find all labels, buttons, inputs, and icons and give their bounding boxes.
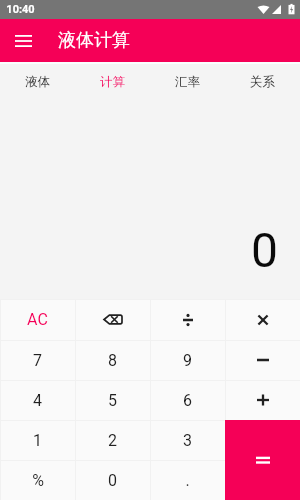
staticText: 9 (183, 351, 192, 370)
button[interactable]: 7 (0, 340, 75, 380)
button[interactable]: 5 (75, 380, 150, 420)
staticText: 7 (33, 351, 42, 370)
staticText: 计算 (100, 74, 125, 90)
staticText: AC (27, 310, 48, 329)
staticText: 0 (251, 222, 278, 278)
staticText: 5 (108, 391, 117, 410)
button[interactable]: Equals (225, 420, 300, 500)
staticText: 1 (33, 431, 42, 450)
button[interactable]: Divide (150, 299, 225, 340)
button[interactable]: Plus (225, 380, 300, 420)
staticText: . (185, 471, 190, 490)
staticText: 8 (108, 351, 117, 370)
staticText: 4 (33, 391, 42, 410)
button[interactable]: 2 (75, 420, 150, 460)
button[interactable]: 3 (150, 420, 225, 460)
button[interactable]: AC (0, 299, 75, 340)
button[interactable]: 8 (75, 340, 150, 380)
staticText: 0 (108, 471, 117, 490)
button[interactable]: Minus (225, 340, 300, 380)
staticText: 液体计算 (58, 29, 130, 52)
button[interactable]: . (150, 460, 225, 500)
button[interactable]: 1 (0, 420, 75, 460)
button[interactable]: 计算 (75, 64, 150, 99)
button[interactable]: 9 (150, 340, 225, 380)
button[interactable]: Multiply (225, 299, 300, 340)
button[interactable]: 4 (0, 380, 75, 420)
button[interactable]: Backspace (75, 299, 150, 340)
staticText: 3 (183, 431, 192, 450)
button[interactable]: 液体 (0, 64, 75, 99)
button[interactable]: 关系 (225, 64, 300, 99)
staticText: 6 (183, 391, 192, 410)
staticText: 2 (108, 431, 117, 450)
button[interactable]: 汇率 (150, 64, 225, 99)
staticText: 10:40 (6, 3, 35, 16)
button[interactable]: 6 (150, 380, 225, 420)
staticText: 液体 (25, 74, 50, 90)
staticText: 汇率 (175, 74, 200, 90)
button[interactable]: Menu (11, 29, 35, 53)
button[interactable]: 0 (75, 460, 150, 500)
button[interactable]: % (0, 460, 75, 500)
staticText: 关系 (250, 74, 275, 90)
staticText: % (32, 471, 44, 490)
